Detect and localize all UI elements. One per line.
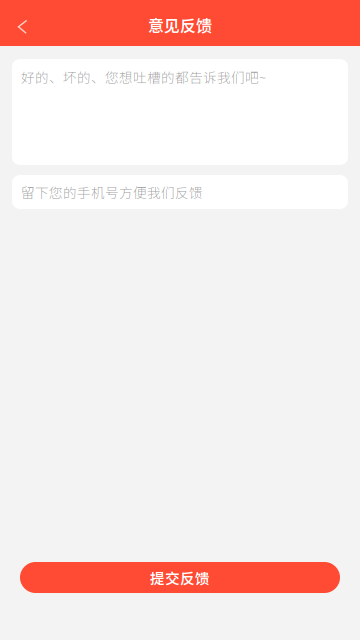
staticText: 好的、坏的、您想吐槽的都告诉我们吧~: [21, 67, 266, 87]
staticText: 提交反馈: [150, 567, 210, 588]
staticText: 意见反馈: [148, 13, 212, 37]
button[interactable]: 提交反馈: [20, 562, 340, 593]
staticText: 留下您的手机号方便我们反馈: [21, 182, 203, 202]
button[interactable]: Back: [0, 0, 45, 44]
